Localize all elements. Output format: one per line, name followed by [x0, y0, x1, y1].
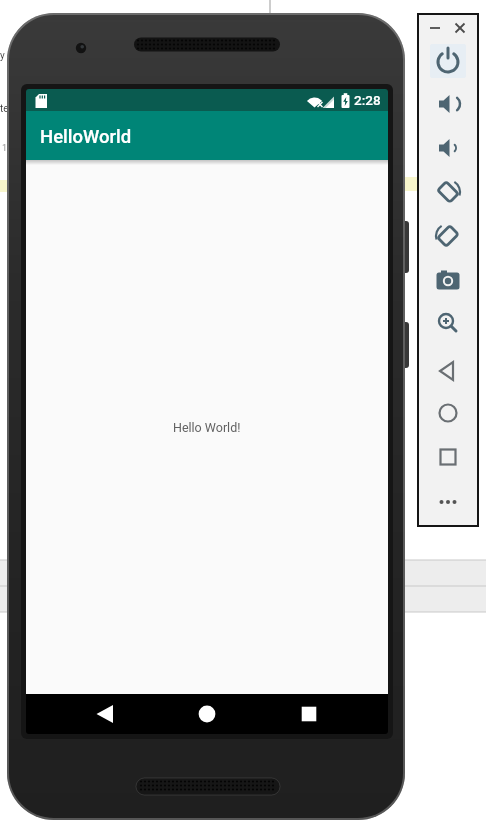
staticText: te	[0, 103, 9, 115]
button[interactable]	[428, 43, 468, 79]
button[interactable]	[428, 174, 468, 210]
staticText: Hello World!	[173, 420, 241, 435]
button[interactable]	[428, 439, 468, 475]
button[interactable]	[428, 130, 468, 166]
staticText: y	[0, 50, 5, 62]
button[interactable]	[428, 353, 468, 389]
button[interactable]	[450, 18, 470, 38]
button[interactable]	[187, 694, 227, 734]
staticText: 2:28	[354, 92, 381, 108]
button[interactable]	[428, 86, 468, 122]
button[interactable]	[289, 694, 329, 734]
button[interactable]	[425, 18, 445, 38]
button[interactable]	[428, 262, 468, 298]
button[interactable]	[428, 484, 468, 520]
staticText: 1.	[2, 143, 10, 154]
button[interactable]	[428, 218, 468, 254]
button[interactable]	[85, 694, 125, 734]
button[interactable]	[428, 395, 468, 431]
button[interactable]	[428, 305, 468, 341]
staticText: HelloWorld	[40, 126, 132, 148]
